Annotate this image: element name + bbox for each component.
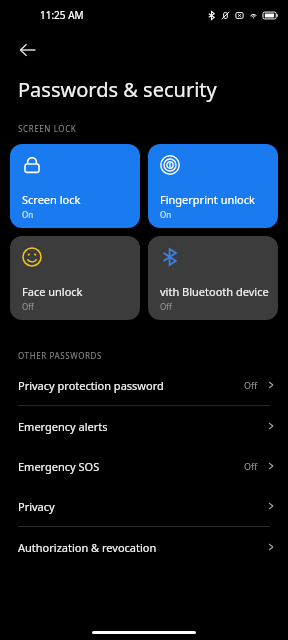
button[interactable]: Back	[8, 30, 48, 70]
button[interactable]: Emergency alerts	[0, 406, 288, 446]
staticText: Emergency SOS	[18, 459, 244, 474]
staticText: 11:25 AM	[40, 8, 84, 22]
button[interactable]: Screen lock	[10, 144, 140, 228]
button[interactable]: vith Bluetooth device	[148, 236, 278, 320]
staticText: SCREEN LOCK	[18, 123, 77, 134]
staticText: Privacy protection password	[18, 378, 244, 393]
staticText: Privacy	[18, 499, 266, 514]
staticText: vith Bluetooth device	[160, 284, 269, 299]
staticText: Face unlock	[22, 284, 83, 299]
staticText: Passwords & security	[18, 76, 217, 103]
button[interactable]: Emergency SOS	[0, 446, 288, 486]
staticText: Off	[244, 460, 258, 472]
staticText: On	[160, 209, 172, 220]
staticText: Screen lock	[22, 192, 81, 207]
button[interactable]: Fingerprint unlock	[148, 144, 278, 228]
staticText: Authorization & revocation	[18, 540, 266, 555]
staticText: Emergency alerts	[18, 419, 266, 434]
button[interactable]: Authorization & revocation	[0, 527, 288, 567]
staticText: OTHER PASSWORDS	[18, 350, 103, 361]
button[interactable]: Privacy	[0, 486, 288, 526]
button[interactable]: Face unlock	[10, 236, 140, 320]
staticText: On	[22, 209, 34, 220]
button[interactable]: Privacy protection password	[0, 365, 288, 405]
staticText: Off	[160, 301, 172, 312]
staticText: Off	[22, 301, 34, 312]
staticText: Off	[244, 379, 258, 391]
staticText: Fingerprint unlock	[160, 192, 255, 207]
